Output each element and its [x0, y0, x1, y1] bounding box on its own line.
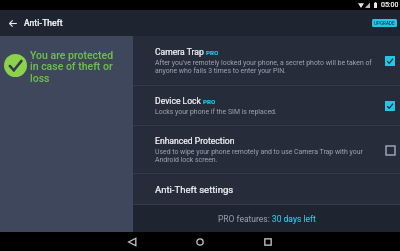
button[interactable]: Enabled	[380, 51, 400, 71]
staticText: 05:00	[381, 1, 399, 9]
button[interactable]: Back	[5, 16, 20, 31]
button[interactable]: UPGRADE	[372, 19, 397, 27]
button[interactable]: Device Lock	[133, 86, 400, 125]
staticText: PRO	[203, 98, 216, 105]
staticText: Enhanced Protection	[155, 136, 235, 146]
button[interactable]: Disabled	[380, 140, 400, 160]
staticText: Anti-Theft	[24, 18, 63, 28]
button[interactable]: Anti-Theft settings	[133, 174, 400, 204]
staticText: UPGRADE	[374, 21, 395, 26]
staticText: After you've remotely locked your phone,…	[155, 59, 376, 75]
button[interactable]: Home	[183, 232, 216, 251]
button[interactable]: Recents	[251, 232, 284, 251]
button[interactable]: Enhanced Protection	[133, 126, 400, 173]
staticText: Locks your phone if the SIM is replaced.	[155, 108, 277, 116]
staticText: PRO	[206, 49, 219, 56]
staticText: PRO features: 30 days left	[218, 214, 316, 224]
staticText: Device Lock	[155, 96, 201, 106]
button[interactable]: Enabled	[380, 96, 400, 116]
staticText: Anti-Theft settings	[155, 184, 234, 195]
staticText: Camera Trap	[155, 47, 204, 57]
staticText: You are protected in case of theft or lo…	[30, 49, 117, 85]
staticText: Used to wipe your phone remotely and to …	[155, 148, 376, 164]
button[interactable]: Camera Trap	[133, 36, 400, 85]
button[interactable]: PRO features: 30 days left	[133, 205, 400, 232]
button[interactable]: Back	[115, 232, 148, 251]
